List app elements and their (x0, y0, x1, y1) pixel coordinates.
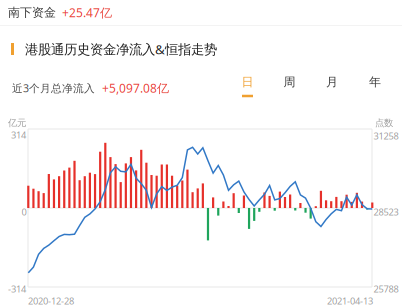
button[interactable]: 日 (229, 73, 265, 103)
staticText: 南下资金 (8, 5, 56, 20)
staticText: 年 (369, 75, 381, 89)
staticText: 周 (283, 75, 295, 89)
button[interactable]: 周 (271, 73, 307, 103)
staticText: 314 (11, 129, 26, 141)
button[interactable]: 月 (314, 73, 350, 103)
staticText: 2020-12-28 (28, 295, 74, 307)
staticText: 亿元 (8, 117, 26, 129)
staticText: 港股通历史资金净流入&恒指走势 (25, 40, 217, 58)
staticText: +5,097.08亿 (102, 80, 169, 96)
staticText: 月 (326, 75, 338, 89)
staticText: 2021-04-13 (327, 295, 373, 307)
staticText: 0 (21, 206, 26, 218)
button[interactable]: 年 (357, 73, 393, 103)
staticText: 28523 (373, 206, 398, 218)
staticText: 日 (241, 75, 253, 89)
staticText: +25.47亿 (62, 4, 112, 20)
staticText: 近3个月总净流入 (12, 81, 95, 95)
staticText: 31258 (373, 130, 398, 142)
staticText: -314 (8, 283, 26, 295)
staticText: 25788 (373, 283, 398, 295)
staticText: 点数 (375, 117, 393, 129)
